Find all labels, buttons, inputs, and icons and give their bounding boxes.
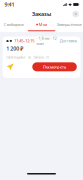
staticText: 9:41 [4, 1, 14, 8]
staticText: Пункт выдачи · ул. Ленина, 10 [6, 56, 49, 59]
button[interactable]: Завершённые [55, 19, 83, 30]
staticText: Заказы [32, 10, 51, 18]
staticText: Мои [39, 22, 47, 27]
staticText: Свободные [4, 22, 24, 27]
button[interactable]: Мои [28, 19, 55, 30]
staticText: 1 200 ₽ [6, 45, 23, 52]
staticText: Посмотреть [43, 64, 66, 69]
staticText: Доставка [60, 38, 77, 43]
staticText: 11:45–12:15 [14, 38, 34, 43]
button[interactable]: Свободные [0, 19, 28, 30]
staticText: · 1,8 км · 12 мин [36, 35, 56, 46]
staticText: Завершённые [57, 22, 82, 27]
button[interactable]: Профиль [72, 11, 79, 17]
button[interactable]: Посмотреть [32, 62, 77, 71]
